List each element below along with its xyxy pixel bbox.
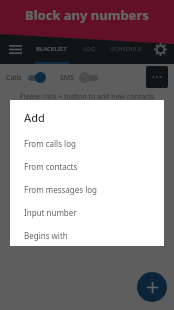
button[interactable]: Input number	[10, 201, 164, 224]
button[interactable]: Add	[137, 272, 167, 302]
button[interactable]: LOG	[73, 34, 106, 64]
staticText: From calls log	[24, 138, 76, 149]
button[interactable]: More options	[146, 66, 168, 88]
staticText: Please click + button to add new contact…	[8, 92, 166, 102]
button[interactable]: SMS	[60, 72, 99, 83]
staticText: LOG	[83, 45, 96, 53]
staticText: From contacts	[24, 161, 78, 172]
staticText: Block any numbers	[25, 6, 149, 24]
staticText: SMS	[60, 73, 75, 83]
staticText: Input number	[24, 207, 77, 218]
staticText: Add	[24, 110, 45, 125]
staticText: BLACKLIST	[36, 45, 67, 53]
button[interactable]: Calls	[6, 72, 46, 83]
staticText: SCHEDULE	[111, 45, 142, 53]
button[interactable]: SCHEDULE	[106, 34, 146, 64]
button[interactable]: From contacts	[10, 155, 164, 178]
button[interactable]: From messages log	[10, 178, 164, 201]
button[interactable]: BLACKLIST	[30, 34, 73, 64]
button[interactable]: Menu	[0, 34, 30, 64]
staticText: Begins with	[24, 230, 68, 241]
staticText: Calls	[6, 73, 22, 83]
button[interactable]: Begins with	[10, 224, 164, 246]
button[interactable]: From calls log	[10, 132, 164, 155]
staticText: From messages log	[24, 184, 98, 195]
button[interactable]: Settings	[146, 35, 174, 63]
